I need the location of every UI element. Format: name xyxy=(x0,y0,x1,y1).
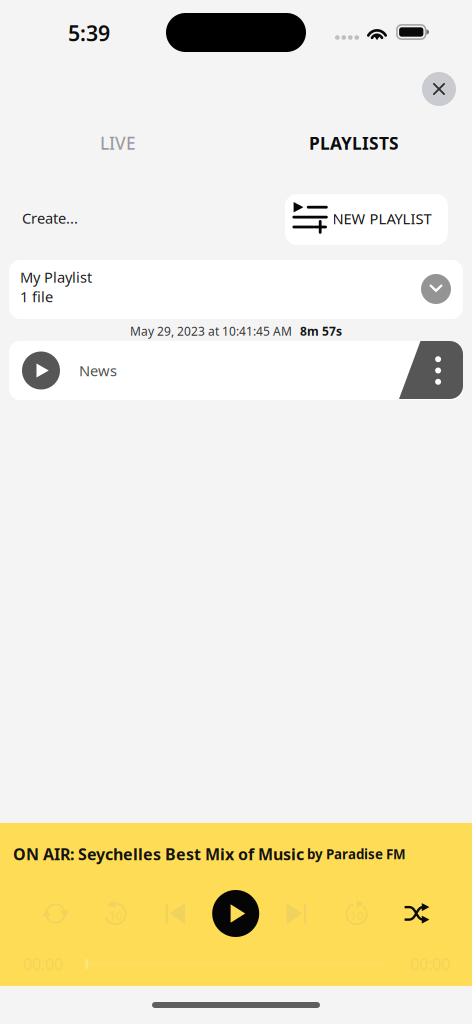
button[interactable]: Forward 10 seconds xyxy=(343,900,369,926)
button[interactable]: NEW PLAYLIST xyxy=(285,194,448,245)
staticText: 10 xyxy=(349,908,363,924)
staticText: May 29, 2023 at 10:41:45 AM xyxy=(130,323,292,339)
staticText: 10 xyxy=(108,908,122,924)
staticText: 00:00 xyxy=(23,953,63,975)
staticText: News xyxy=(79,361,117,380)
staticText: My Playlist xyxy=(20,267,92,287)
staticText: 00:00 xyxy=(410,953,450,975)
button[interactable]: Play News xyxy=(22,351,60,389)
button[interactable]: Next track xyxy=(286,903,306,924)
staticText: Create... xyxy=(22,208,78,228)
staticText: NEW PLAYLIST xyxy=(332,209,431,228)
staticText: 5:39 xyxy=(68,19,110,47)
button[interactable]: Shuffle xyxy=(404,904,430,923)
button[interactable]: LIVE xyxy=(40,131,196,155)
button[interactable]: Repeat xyxy=(42,900,68,926)
staticText: 1 file xyxy=(20,287,53,306)
button[interactable]: Close xyxy=(422,72,456,106)
staticText: ON AIR: Seychelles Best Mix of Music xyxy=(13,843,304,865)
button[interactable]: PLAYLISTS xyxy=(276,131,432,155)
button[interactable]: Back 10 seconds xyxy=(102,900,128,926)
button[interactable]: My Playlist xyxy=(9,260,463,319)
button[interactable]: Play xyxy=(212,890,259,937)
staticText: LIVE xyxy=(100,131,136,154)
staticText: PLAYLISTS xyxy=(309,131,399,154)
staticText: 8m 57s xyxy=(300,323,342,339)
staticText: by Paradise FM xyxy=(304,845,406,863)
button[interactable]: More options xyxy=(399,341,463,399)
button[interactable]: Previous track xyxy=(165,903,185,924)
